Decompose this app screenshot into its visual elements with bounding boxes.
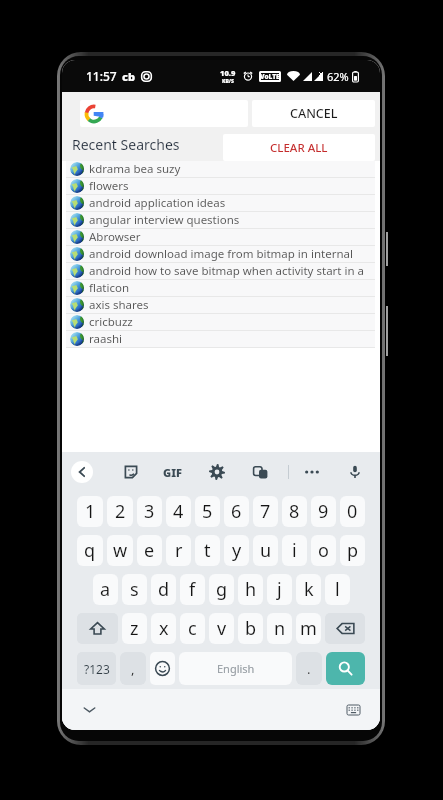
- button[interactable]: 6: [224, 496, 249, 527]
- staticText: h: [245, 577, 257, 602]
- button[interactable]: w: [107, 535, 133, 566]
- button[interactable]: Abrowser: [66, 229, 375, 245]
- staticText: n: [274, 616, 286, 641]
- button[interactable]: Backspace: [325, 613, 365, 644]
- staticText: cricbuzz: [89, 314, 133, 330]
- button[interactable]: k: [296, 574, 321, 605]
- staticText: CLEAR ALL: [270, 140, 328, 156]
- button[interactable]: axis shares: [66, 297, 375, 313]
- staticText: j: [277, 577, 282, 602]
- staticText: s: [130, 577, 139, 602]
- button[interactable]: x: [151, 613, 176, 644]
- staticText: English: [217, 661, 255, 676]
- button[interactable]: h: [238, 574, 263, 605]
- button[interactable]: flaticon: [66, 280, 375, 296]
- button[interactable]: [80, 100, 248, 127]
- button[interactable]: angular interview questions: [66, 212, 375, 228]
- button[interactable]: l: [325, 574, 350, 605]
- staticText: 4: [173, 499, 184, 524]
- button[interactable]: o: [311, 535, 336, 566]
- button[interactable]: CLEAR ALL: [223, 134, 375, 161]
- staticText: kdrama bea suzy: [89, 161, 181, 177]
- button[interactable]: 5: [195, 496, 220, 527]
- button[interactable]: Settings: [209, 464, 225, 480]
- staticText: w: [113, 538, 128, 563]
- button[interactable]: CANCEL: [252, 100, 375, 127]
- button[interactable]: android how to save bitmap when activity…: [66, 263, 375, 279]
- button[interactable]: .: [296, 652, 322, 685]
- staticText: p: [347, 538, 359, 563]
- staticText: q: [84, 538, 96, 563]
- button[interactable]: 3: [137, 496, 162, 527]
- button[interactable]: 2: [107, 496, 133, 527]
- button[interactable]: q: [77, 535, 103, 566]
- staticText: x: [159, 616, 169, 641]
- staticText: 10.9: [220, 68, 236, 78]
- staticText: 62%: [327, 69, 349, 84]
- button[interactable]: b: [238, 613, 263, 644]
- staticText: 7: [260, 499, 271, 524]
- staticText: 9: [318, 499, 329, 524]
- staticText: .: [307, 660, 311, 678]
- button[interactable]: j: [267, 574, 292, 605]
- button[interactable]: ,: [120, 652, 146, 685]
- button[interactable]: Emoji: [150, 652, 175, 685]
- button[interactable]: n: [267, 613, 292, 644]
- button[interactable]: s: [122, 574, 147, 605]
- button[interactable]: f: [180, 574, 205, 605]
- button[interactable]: z: [122, 613, 147, 644]
- button[interactable]: android download image from bitmap in in…: [66, 246, 375, 262]
- button[interactable]: v: [209, 613, 234, 644]
- button[interactable]: c: [180, 613, 205, 644]
- button[interactable]: raashi: [66, 331, 375, 347]
- button[interactable]: Hide keyboard: [82, 702, 97, 717]
- button[interactable]: cricbuzz: [66, 314, 375, 330]
- button[interactable]: a: [93, 574, 118, 605]
- button[interactable]: t: [195, 535, 220, 566]
- staticText: cb: [122, 69, 136, 84]
- button[interactable]: 0: [340, 496, 365, 527]
- button[interactable]: i: [282, 535, 307, 566]
- staticText: 3: [144, 499, 155, 524]
- staticText: g: [216, 577, 228, 602]
- button[interactable]: 1: [77, 496, 103, 527]
- staticText: t: [204, 538, 211, 563]
- button[interactable]: 8: [282, 496, 307, 527]
- staticText: axis shares: [89, 297, 149, 313]
- button[interactable]: 9: [311, 496, 336, 527]
- staticText: u: [260, 538, 272, 563]
- button[interactable]: ?123: [77, 652, 116, 685]
- button[interactable]: r: [166, 535, 191, 566]
- button[interactable]: 7: [253, 496, 278, 527]
- button[interactable]: d: [151, 574, 176, 605]
- staticText: VoLTE: [260, 72, 280, 81]
- button[interactable]: kdrama bea suzy: [66, 161, 375, 177]
- button[interactable]: flowers: [66, 178, 375, 194]
- button[interactable]: Translate: [253, 465, 268, 480]
- button[interactable]: android application ideas: [66, 195, 375, 211]
- button[interactable]: GIF: [163, 452, 182, 492]
- staticText: 5: [202, 499, 213, 524]
- button[interactable]: Search: [326, 652, 365, 685]
- staticText: android how to save bitmap when activity…: [89, 263, 375, 279]
- button[interactable]: p: [340, 535, 365, 566]
- staticText: y: [232, 538, 242, 563]
- button[interactable]: g: [209, 574, 234, 605]
- staticText: ?123: [84, 661, 110, 677]
- button[interactable]: m: [296, 613, 321, 644]
- button[interactable]: u: [253, 535, 278, 566]
- staticText: m: [300, 616, 317, 641]
- button[interactable]: y: [224, 535, 249, 566]
- button[interactable]: Voice input: [348, 465, 362, 479]
- button[interactable]: English: [179, 652, 292, 685]
- button[interactable]: Shift: [77, 613, 118, 644]
- button[interactable]: 4: [166, 496, 191, 527]
- staticText: Abrowser: [89, 229, 141, 245]
- button[interactable]: Back: [71, 461, 93, 483]
- button[interactable]: e: [137, 535, 162, 566]
- staticText: c: [188, 616, 197, 641]
- staticText: android download image from bitmap in in…: [89, 246, 375, 262]
- button[interactable]: Switch keyboard: [347, 705, 360, 715]
- button[interactable]: Stickers: [124, 465, 138, 479]
- button[interactable]: More: [305, 465, 319, 479]
